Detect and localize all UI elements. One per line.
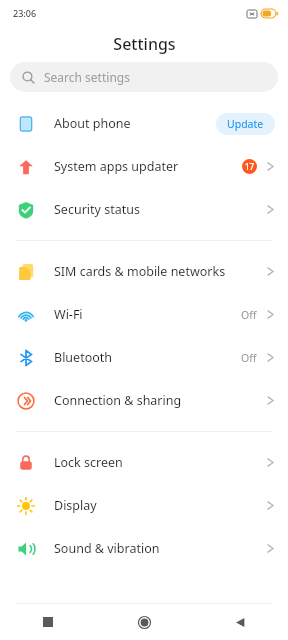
button[interactable]: Display — [0, 484, 288, 527]
staticText: Bluetooth — [54, 349, 113, 366]
button[interactable]: Connection & sharing — [0, 379, 288, 422]
staticText: SIM cards & mobile networks — [54, 263, 226, 280]
button[interactable]: About phone — [0, 102, 288, 145]
staticText: System apps updater — [54, 158, 179, 175]
button[interactable]: Lock screen — [0, 441, 288, 484]
staticText: Settings — [113, 33, 176, 55]
button[interactable]: Recents — [0, 604, 96, 640]
staticText: Off — [241, 351, 257, 365]
staticText: Lock screen — [54, 454, 123, 471]
staticText: Sound & vibration — [54, 540, 160, 557]
staticText: About phone — [54, 115, 131, 132]
button[interactable]: Security status — [0, 188, 288, 231]
button[interactable]: Back — [192, 604, 288, 640]
button[interactable]: Search settings — [10, 62, 278, 92]
staticText: Search settings — [44, 69, 130, 85]
staticText: 23:06 — [13, 7, 37, 19]
button[interactable]: SIM cards & mobile networks — [0, 250, 288, 293]
button[interactable]: Bluetooth — [0, 336, 288, 379]
staticText: Security status — [54, 201, 140, 218]
staticText: Update — [227, 117, 264, 131]
staticText: Wi-Fi — [54, 306, 83, 323]
button[interactable]: System apps updater — [0, 145, 288, 188]
button[interactable]: Home — [96, 604, 192, 640]
button[interactable]: Sound & vibration — [0, 527, 288, 570]
button[interactable]: Wi-Fi — [0, 293, 288, 336]
staticText: Off — [241, 308, 257, 322]
button[interactable]: Update — [216, 113, 275, 135]
staticText: Display — [54, 497, 97, 514]
staticText: 17 — [245, 161, 255, 172]
staticText: Connection & sharing — [54, 392, 182, 409]
